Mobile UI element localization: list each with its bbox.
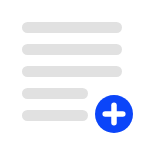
button[interactable]: Add item <box>95 95 133 133</box>
button[interactable]: Item 3 <box>22 66 122 77</box>
button[interactable]: Item 1 <box>22 22 122 33</box>
button[interactable]: Item 2 <box>22 44 122 55</box>
button[interactable]: Item 4 <box>22 88 88 99</box>
button[interactable]: Item 5 <box>22 110 88 121</box>
